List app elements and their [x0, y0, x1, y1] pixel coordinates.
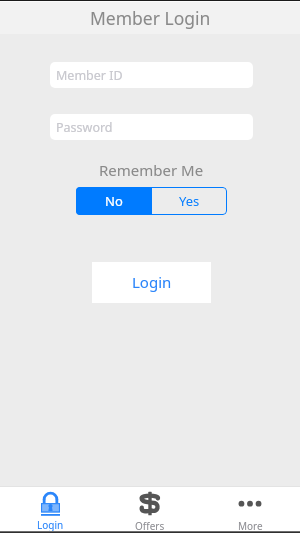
staticText: No	[105, 192, 123, 210]
button[interactable]: Member ID	[50, 62, 253, 88]
staticText: Offers	[135, 519, 165, 531]
staticText: Yes	[179, 192, 200, 210]
button[interactable]: Login	[0, 487, 100, 531]
button[interactable]: No	[76, 187, 152, 215]
staticText: Member ID	[56, 67, 123, 84]
other: Offers	[139, 491, 161, 517]
staticText: More	[238, 519, 263, 531]
other: More	[238, 491, 262, 517]
button[interactable]: Password	[50, 114, 253, 140]
button[interactable]: Yes	[152, 187, 227, 215]
other: Login	[41, 491, 60, 516]
staticText: Remember Me	[99, 160, 204, 176]
staticText: Password	[56, 119, 113, 136]
staticText: Login	[132, 272, 172, 292]
staticText: Login	[37, 518, 64, 531]
staticText: Member Login	[90, 6, 211, 30]
button[interactable]: Login	[92, 262, 211, 303]
button[interactable]: Offers	[100, 487, 200, 531]
button[interactable]: More	[200, 487, 300, 531]
